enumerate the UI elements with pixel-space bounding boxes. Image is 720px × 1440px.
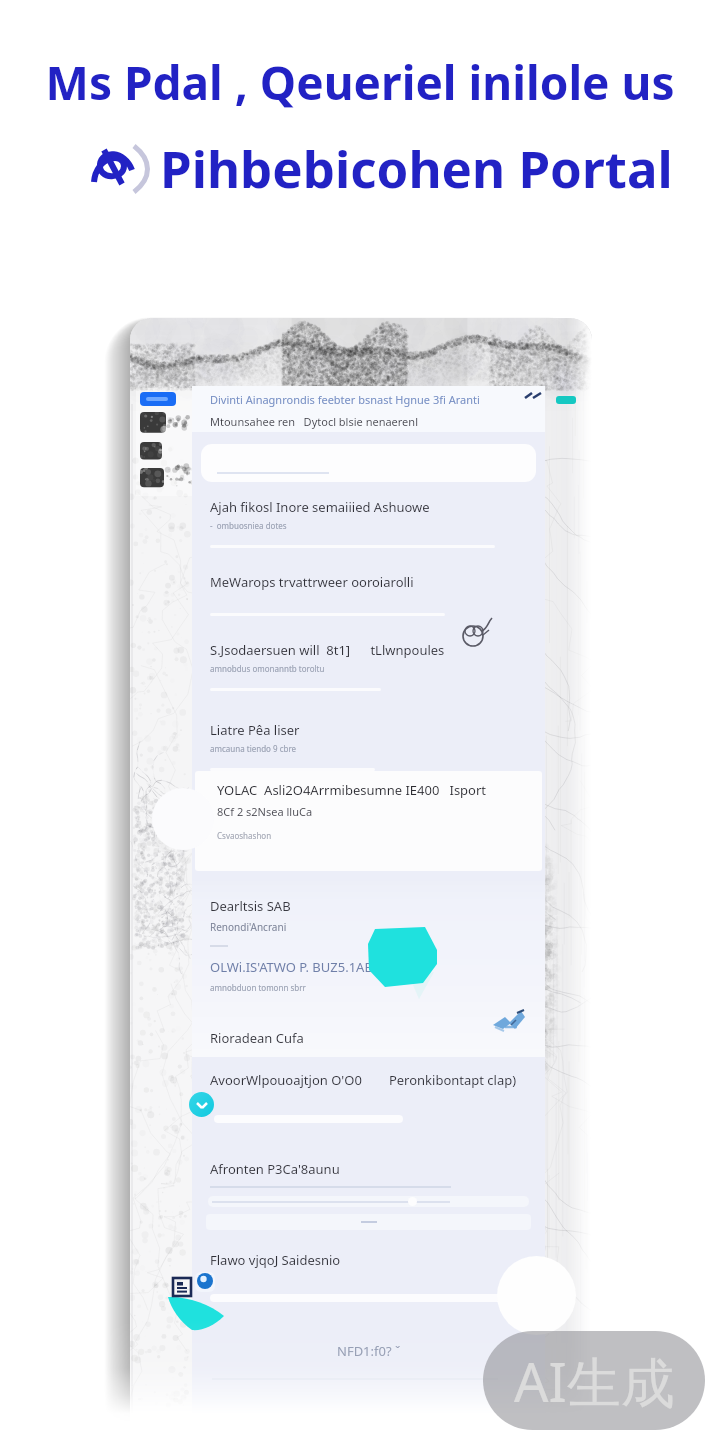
- button[interactable]: Ajah fikosl Inore semaiiied Ashuowe: [192, 498, 545, 573]
- staticText: MeWarops trvattrweer ooroiarolli: [210, 573, 414, 591]
- button[interactable]: Search: [201, 444, 536, 482]
- staticText: Afronten P3Ca'8aunu: [210, 1160, 340, 1178]
- button[interactable]: YOLAC Asli2O4Arrmibesumne IE400 Isport: [195, 771, 542, 871]
- button[interactable]: MeWarops trvattrweer ooroiarolli: [192, 573, 545, 641]
- staticText: Divinti Ainagnrondis feebter bsnast Hgnu…: [210, 392, 480, 407]
- button[interactable]: Expand: [189, 1092, 214, 1117]
- staticText: S.Jsodaersuen will 8t1] tLlwnpoules: [210, 641, 445, 659]
- staticText: - ombuosniea dotes: [210, 520, 287, 531]
- staticText: OLWi.IS'ATWO P. BUZ5.1ABL: [210, 958, 380, 976]
- staticText: NFD1:f0? ˇ: [337, 1342, 401, 1360]
- button[interactable]: Liatre Pêa liser: [192, 721, 545, 771]
- button[interactable]: S.Jsodaersuen will 8t1] tLlwnpoules: [192, 641, 545, 721]
- button[interactable]: Dearltsis SAB: [192, 881, 545, 1057]
- staticText: Ajah fikosl Inore semaiiied Ashuowe: [210, 498, 430, 516]
- staticText: Mtounsahee ren Dytocl blsie nenaerenl: [210, 414, 418, 429]
- staticText: AvoorWlpouoajtjon O'O0 Peronkibontapt cl…: [210, 1071, 517, 1089]
- staticText: 8Cf 2 s2Nsea lluCa: [217, 804, 313, 819]
- staticText: Dearltsis SAB: [210, 897, 291, 915]
- staticText: Ms Pdal , Qeueriel inilole us: [45, 51, 675, 114]
- staticText: amnobdus omonanntb toroltu: [210, 663, 325, 674]
- staticText: Renondi'Ancrani: [210, 920, 287, 934]
- staticText: Liatre Pêa liser: [210, 721, 300, 739]
- staticText: amnobduon tomonn sbrr: [210, 982, 306, 993]
- staticText: Flawo vjqoJ Saidesnio: [210, 1251, 341, 1269]
- staticText: Rioradean Cufa: [210, 1029, 304, 1047]
- staticText: YOLAC Asli2O4Arrmibesumne IE400 Isport: [217, 781, 487, 799]
- button[interactable]: Sync: [195, 1272, 215, 1292]
- staticText: amcauna tiendo 9 cbre: [210, 743, 297, 754]
- button[interactable]: Documents: [173, 1278, 191, 1296]
- staticText: AI生成: [514, 1344, 675, 1418]
- button[interactable]: AvoorWlpouoajtjon O'O0 Peronkibontapt cl…: [192, 1071, 545, 1089]
- staticText: Csvaoshashon: [217, 830, 272, 841]
- staticText: Pihbebicohen Portal: [160, 133, 673, 202]
- button[interactable]: Compose: [497, 1256, 576, 1335]
